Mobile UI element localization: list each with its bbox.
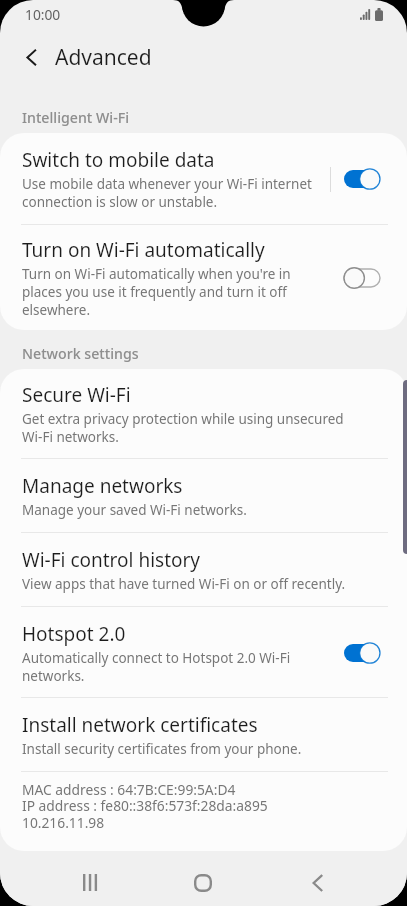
button[interactable]: Switch to mobile data [0,133,407,225]
staticText: Advanced [55,43,152,72]
button[interactable]: Manage networks [0,459,407,533]
button[interactable]: Back [8,34,54,80]
staticText: View apps that have turned Wi-Fi on or o… [22,575,346,593]
staticText: Automatically connect to Hotspot 2.0 Wi-… [22,649,291,685]
staticText: Intelligent Wi-Fi [22,108,130,127]
button[interactable]: Turn on Wi-Fi automatically [0,225,407,330]
staticText: Switch to mobile data [22,147,215,173]
button[interactable]: Wi-Fi control history [0,533,407,607]
button[interactable]: Back [260,859,374,906]
button[interactable]: Recents [33,859,146,906]
button[interactable]: Toggle on [344,168,380,190]
staticText: Manage networks [22,473,183,499]
staticText: Secure Wi-Fi [22,382,131,408]
button[interactable]: Toggle off [344,267,380,289]
button[interactable]: Secure Wi-Fi [0,369,407,459]
button[interactable]: Toggle on [344,642,380,664]
staticText: Install security certificates from your … [22,740,302,758]
staticText: Network settings [22,344,139,363]
staticText: Manage your saved Wi-Fi networks. [22,501,247,519]
staticText: Install network certificates [22,712,258,738]
staticText: 10:00 [25,5,61,24]
button[interactable]: Hotspot 2.0 [0,607,407,698]
staticText: Turn on Wi-Fi automatically [22,237,265,263]
staticText: Wi-Fi control history [22,547,201,573]
staticText: Get extra privacy protection while using… [22,410,344,446]
staticText: Use mobile data whenever your Wi-Fi inte… [22,175,312,211]
button[interactable]: Home [146,859,260,906]
staticText: Hotspot 2.0 [22,621,126,647]
button[interactable]: Install network certificates [0,698,407,772]
staticText: MAC address : 64:7B:CE:99:5A:D4 IP addre… [22,780,268,832]
staticText: Turn on Wi-Fi automatically when you're … [22,265,291,319]
